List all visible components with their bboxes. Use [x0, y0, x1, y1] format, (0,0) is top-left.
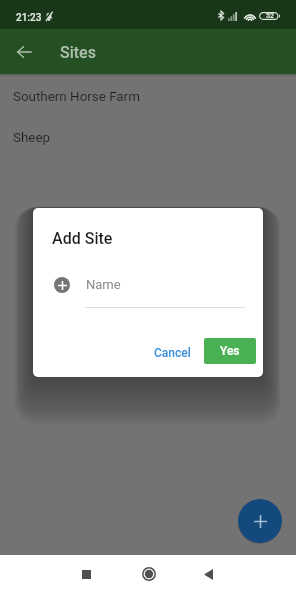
button[interactable]: Name: [86, 266, 246, 302]
staticText: Name: [86, 277, 121, 292]
button[interactable]: Cancel: [146, 340, 198, 366]
staticText: Cancel: [154, 346, 191, 360]
staticText: Southern Horse Farm: [13, 89, 140, 105]
staticText: Yes: [220, 344, 240, 358]
button[interactable]: Sheep: [0, 117, 296, 158]
button[interactable]: Home: [130, 555, 167, 592]
staticText: Add Site: [52, 229, 113, 248]
button[interactable]: Yes: [204, 338, 256, 364]
staticText: Sheep: [13, 130, 51, 146]
staticText: Sites: [60, 43, 96, 62]
staticText: 21:23: [16, 12, 42, 24]
button[interactable]: Back: [190, 555, 227, 592]
staticText: 52: [266, 12, 274, 20]
button[interactable]: Southern Horse Farm: [0, 76, 296, 117]
button[interactable]: Add site: [238, 499, 282, 543]
button[interactable]: Navigate up: [7, 29, 42, 74]
button[interactable]: Recent apps: [68, 555, 105, 592]
